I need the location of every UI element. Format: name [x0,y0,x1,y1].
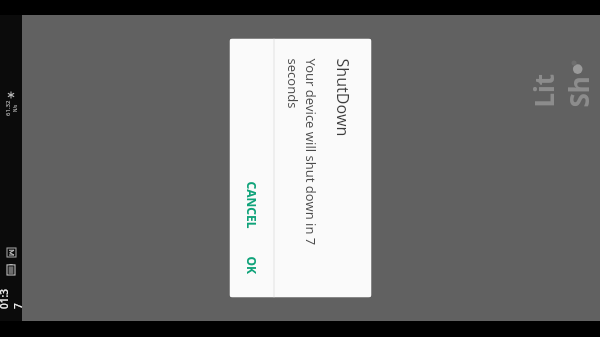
staticText: CANCEL [243,181,259,228]
staticText: 01:37 [0,287,25,309]
staticText: ShutDown [331,58,353,136]
staticText: OK [243,256,259,274]
button[interactable]: OK [235,247,267,283]
staticText: 61.32 [4,100,12,116]
staticText: Your device will shut down in 7 seconds [283,58,319,277]
button[interactable]: CANCEL [235,172,267,237]
staticText: LitShot [525,67,600,107]
staticText: N/s [12,104,18,112]
